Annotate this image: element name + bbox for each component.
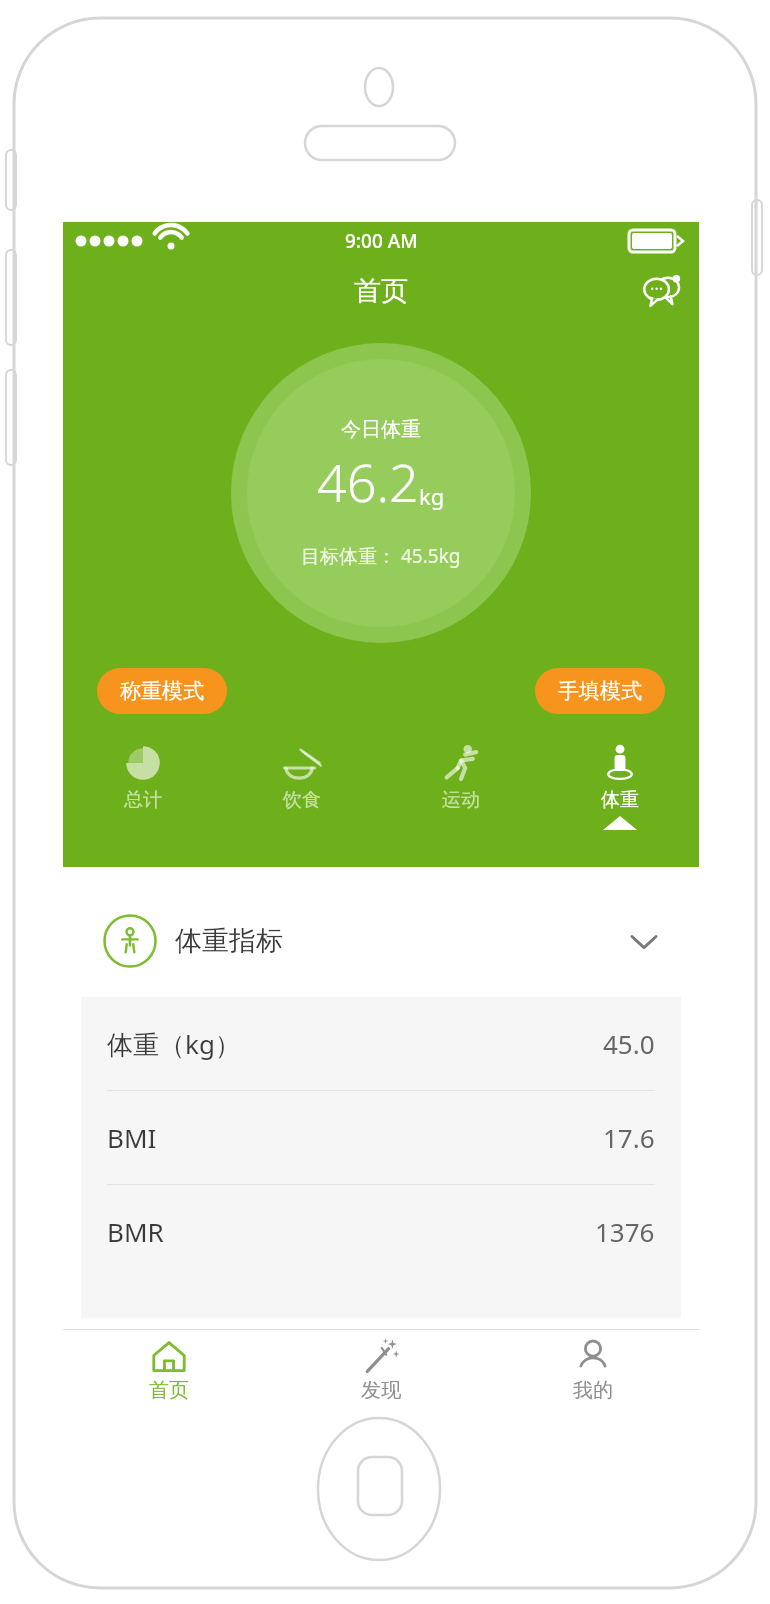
button[interactable]: 体重 bbox=[540, 730, 699, 830]
button[interactable]: 运动 bbox=[381, 730, 540, 830]
staticText: 饮食 bbox=[283, 788, 321, 812]
button[interactable]: Messages bbox=[635, 265, 687, 317]
staticText: kg bbox=[419, 481, 445, 511]
button[interactable]: 称重模式 bbox=[97, 668, 227, 714]
button[interactable]: BMI bbox=[81, 1091, 681, 1185]
staticText: 9:00 AM bbox=[345, 228, 418, 254]
staticText: 1376 bbox=[595, 1214, 655, 1249]
staticText: 今日体重 bbox=[341, 417, 421, 442]
staticText: BMR bbox=[107, 1214, 164, 1249]
button[interactable]: 总计 bbox=[63, 730, 222, 830]
staticText: 称重模式 bbox=[120, 678, 204, 704]
button[interactable]: 我的 bbox=[487, 1330, 699, 1408]
staticText: 总计 bbox=[124, 788, 162, 812]
button[interactable]: 体重指标 bbox=[81, 885, 681, 997]
button[interactable]: BMR bbox=[81, 1185, 681, 1278]
button[interactable]: 手填模式 bbox=[535, 668, 665, 714]
staticText: 46.2 bbox=[317, 446, 419, 517]
staticText: 体重 bbox=[601, 788, 639, 812]
staticText: 目标体重： 45.5kg bbox=[301, 543, 461, 569]
staticText: 发现 bbox=[361, 1378, 401, 1403]
staticText: 体重（kg） bbox=[107, 1026, 241, 1062]
button[interactable]: 饮食 bbox=[222, 730, 381, 830]
staticText: 运动 bbox=[442, 788, 480, 812]
staticText: 我的 bbox=[573, 1378, 613, 1403]
staticText: 首页 bbox=[354, 274, 408, 308]
button[interactable]: 首页 bbox=[63, 1330, 275, 1408]
staticText: 首页 bbox=[149, 1378, 189, 1403]
staticText: BMI bbox=[107, 1120, 157, 1155]
button[interactable]: 发现 bbox=[275, 1330, 487, 1408]
staticText: 手填模式 bbox=[558, 678, 642, 704]
staticText: 17.6 bbox=[603, 1120, 655, 1155]
staticText: 体重指标 bbox=[175, 924, 283, 958]
button[interactable]: 体重（kg） bbox=[81, 997, 681, 1091]
staticText: 45.0 bbox=[603, 1026, 655, 1061]
